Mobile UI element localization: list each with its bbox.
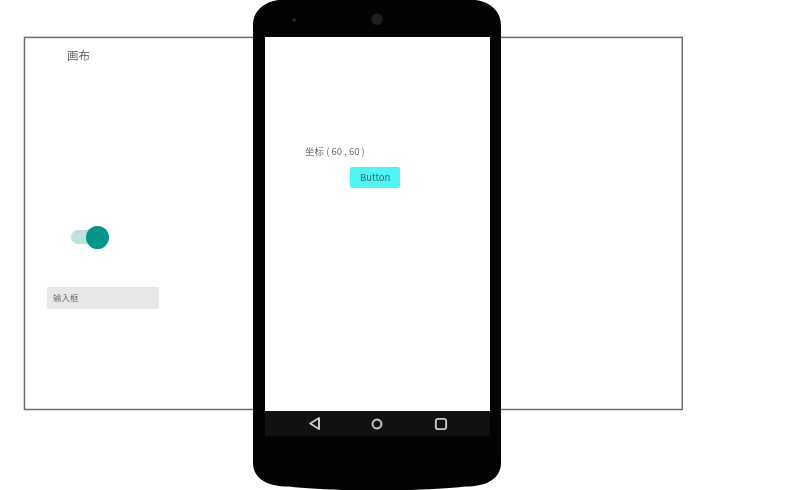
button[interactable]: Recent apps xyxy=(423,411,459,436)
staticText: Button xyxy=(360,170,391,184)
button[interactable]: 输入框 xyxy=(47,287,159,309)
button[interactable]: Toggle switch xyxy=(71,224,111,250)
button[interactable]: Button xyxy=(350,167,400,188)
button[interactable]: Back xyxy=(296,411,332,436)
button[interactable]: Home xyxy=(359,411,395,436)
staticText: 坐标 ( 60 , 60 ) xyxy=(305,144,365,158)
staticText: 画布 xyxy=(67,47,90,64)
staticText: 输入框 xyxy=(53,291,79,303)
